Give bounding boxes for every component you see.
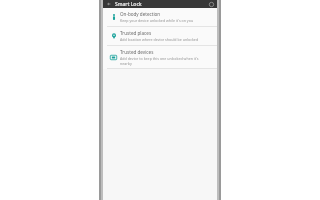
staticText: Add device to keep this one unlocked whe… — [120, 56, 210, 66]
button[interactable]: Help — [205, 0, 217, 8]
staticText: Add location where device should be unlo… — [120, 37, 199, 42]
button[interactable]: On-body detection — [103, 8, 217, 26]
staticText: Trusted devices — [120, 49, 154, 55]
staticText: On-body detection — [120, 11, 161, 17]
staticText: Smart Lock — [115, 1, 142, 8]
button[interactable]: Back — [103, 0, 115, 8]
staticText: Keep your device unlocked while it's on … — [120, 18, 194, 23]
button[interactable]: Trusted devices — [103, 46, 217, 68]
staticText: Trusted places — [120, 30, 152, 36]
button[interactable]: Trusted places — [103, 27, 217, 45]
